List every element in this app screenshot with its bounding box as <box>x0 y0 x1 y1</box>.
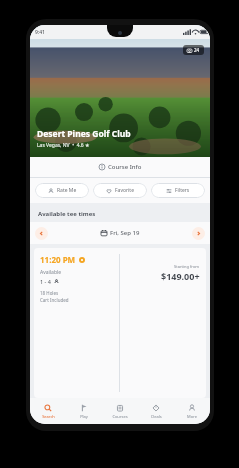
staticText: Deals <box>151 414 162 419</box>
staticText: Cart Included <box>40 297 69 303</box>
staticText: Starting from <box>174 264 200 269</box>
button[interactable]: Search <box>30 398 66 424</box>
button[interactable]: Favorite <box>93 183 147 198</box>
button[interactable]: Filters <box>151 183 205 198</box>
button[interactable]: Rate Me <box>35 183 89 198</box>
button[interactable]: Course Info <box>30 157 210 177</box>
button[interactable]: Next day <box>192 227 205 240</box>
staticText: Available <box>40 269 62 276</box>
button[interactable]: Courses <box>102 398 138 424</box>
staticText: Desert Pines Golf Club <box>37 128 131 140</box>
staticText: 1 - 4 <box>40 278 51 285</box>
button[interactable]: Deals <box>138 398 174 424</box>
staticText: 18 Holes <box>40 290 59 296</box>
staticText: Available tee times <box>38 210 96 218</box>
button[interactable]: View photos <box>183 45 204 55</box>
button[interactable]: 11:20 PM <box>34 248 206 398</box>
staticText: Rate Me <box>57 187 77 194</box>
staticText: Las Vegas, NV • 4.6 ★ <box>37 142 90 149</box>
staticText: Favorite <box>115 187 134 194</box>
staticText: 11:20 PM <box>40 254 76 265</box>
button[interactable]: Previous day <box>35 227 48 240</box>
staticText: Search <box>42 414 55 419</box>
staticText: $149.00+ <box>161 270 200 282</box>
staticText: Fri, Sep 19 <box>110 229 140 237</box>
staticText: Course Info <box>108 163 142 171</box>
button[interactable]: Fri, Sep 19 <box>53 222 187 244</box>
staticText: Play <box>80 414 88 419</box>
staticText: 9:41 <box>35 29 45 36</box>
button[interactable]: More <box>174 398 210 424</box>
staticText: Filters <box>175 187 190 194</box>
staticText: More <box>187 414 197 419</box>
staticText: Courses <box>112 414 128 419</box>
button[interactable]: Play <box>66 398 102 424</box>
staticText: 24 <box>194 47 200 53</box>
